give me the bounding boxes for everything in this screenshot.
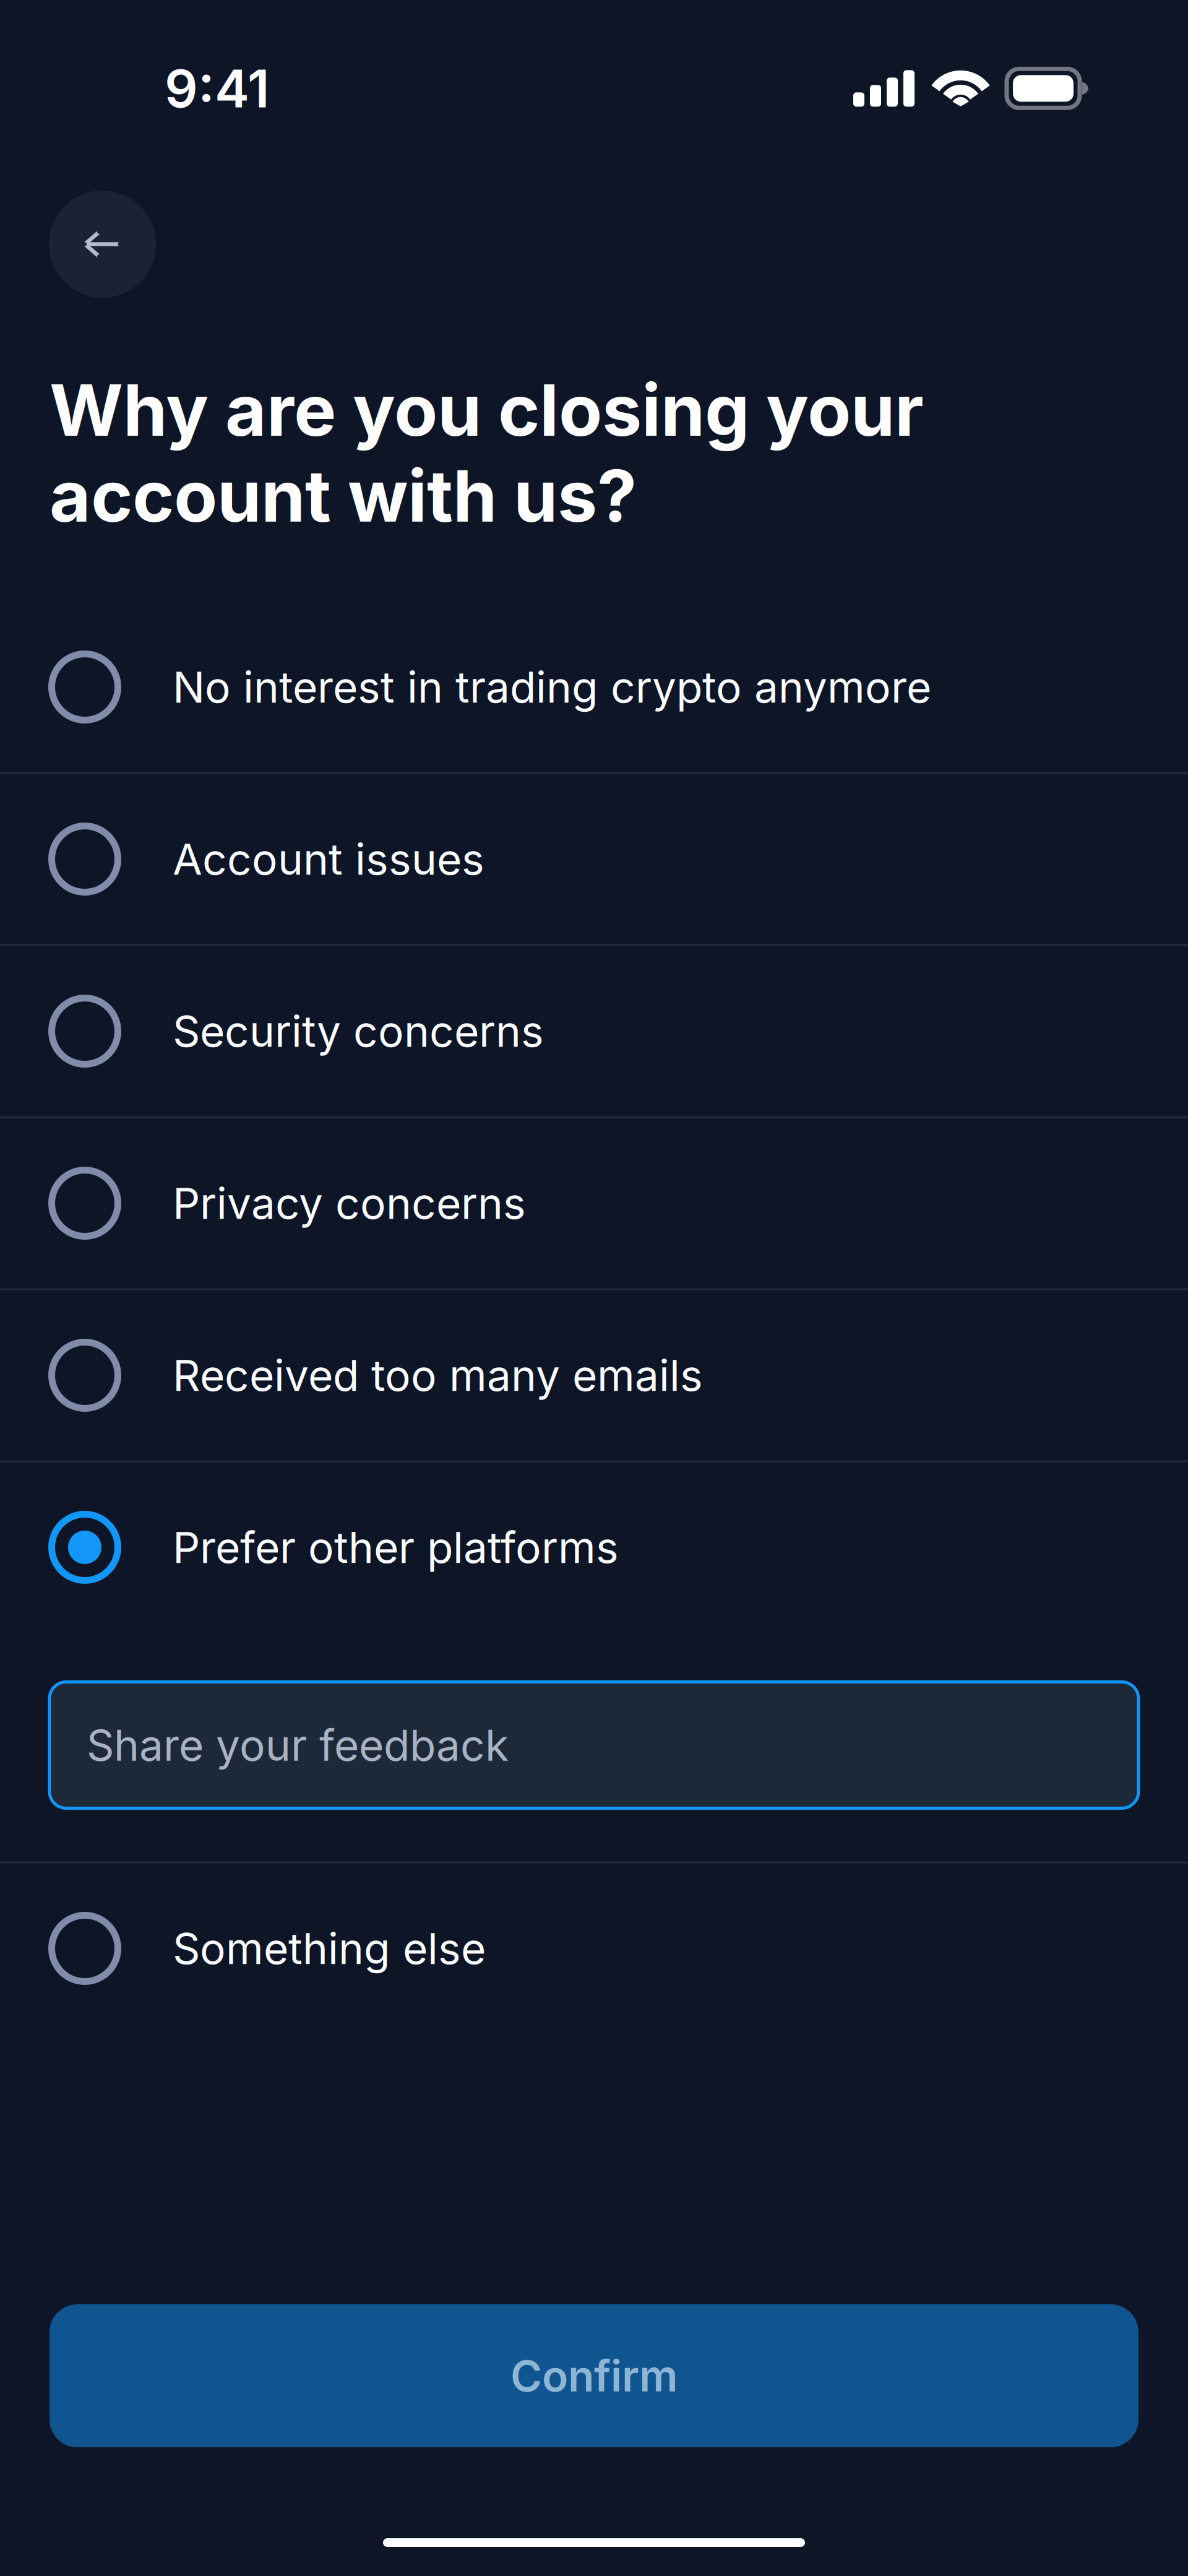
button[interactable]: Something else xyxy=(0,1863,1188,2034)
button[interactable]: Confirm xyxy=(49,2304,1138,2447)
staticText: Something else xyxy=(173,1922,486,1974)
button[interactable]: Share your feedback xyxy=(49,1682,1138,1808)
button[interactable]: Received too many emails xyxy=(0,1290,1188,1460)
staticText: Security concerns xyxy=(173,1005,544,1057)
staticText: Prefer other platforms xyxy=(173,1521,619,1573)
staticText: Account issues xyxy=(173,833,484,885)
staticText: Share your feedback xyxy=(87,1719,509,1771)
button[interactable]: Back xyxy=(49,191,156,298)
staticText: Why are you closing your account with us… xyxy=(49,367,924,539)
button[interactable]: Prefer other platforms xyxy=(0,1462,1188,1632)
staticText: 9:41 xyxy=(165,57,270,120)
button[interactable]: Privacy concerns xyxy=(0,1118,1188,1288)
staticText: Received too many emails xyxy=(173,1349,703,1401)
button[interactable]: Security concerns xyxy=(0,946,1188,1116)
button[interactable]: No interest in trading crypto anymore xyxy=(0,602,1188,772)
staticText: No interest in trading crypto anymore xyxy=(173,661,931,713)
staticText: Confirm xyxy=(510,2350,678,2402)
button[interactable]: Account issues xyxy=(0,774,1188,944)
staticText: Privacy concerns xyxy=(173,1177,526,1229)
